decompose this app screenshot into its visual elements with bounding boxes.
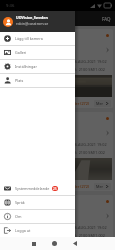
button[interactable]: Back xyxy=(73,241,77,246)
button[interactable]: UOVision_Sweden xyxy=(0,11,75,32)
button[interactable]: Om xyxy=(0,210,75,223)
button[interactable]: Mer xyxy=(94,183,111,190)
staticText: Logga ut xyxy=(15,228,31,233)
staticText: Galleri xyxy=(15,50,27,55)
button[interactable]: Inställningar xyxy=(0,60,75,73)
staticText: IMEI 86732 xyxy=(6,48,28,53)
staticText: robin@casstrom.se xyxy=(16,21,49,26)
staticText: UOVision_Sweden xyxy=(16,15,48,20)
staticText: Mer xyxy=(96,184,104,189)
button[interactable]: Home xyxy=(52,241,57,246)
button[interactable]: Mer xyxy=(94,100,111,107)
button[interactable]: Logga ut xyxy=(0,224,75,237)
button[interactable]: Kamera 2 xyxy=(2,112,113,191)
staticText: Plats xyxy=(15,78,24,83)
staticText: 98% 26-AUG-2021 19:02 xyxy=(63,225,107,230)
button[interactable]: Hämta bilder (272) xyxy=(4,100,90,107)
staticText: Systemmeddelande xyxy=(15,186,50,191)
staticText: Kamera 3 xyxy=(6,198,29,205)
staticText: Mer xyxy=(96,101,104,106)
staticText: Kamera 1 xyxy=(6,32,29,39)
button[interactable]: Systemmeddelande xyxy=(0,182,75,195)
staticText: Hämta bilder (272) xyxy=(56,101,90,106)
staticText: 100% 2100 SM/1.002 xyxy=(67,67,105,72)
staticText: Språk xyxy=(15,200,25,205)
staticText: 9:36 xyxy=(6,3,15,9)
staticText: Lägg till kamera xyxy=(15,36,43,41)
staticText: Hämta bilder (272) xyxy=(56,184,90,189)
staticText: Om xyxy=(15,214,22,219)
staticText: 98% 26-AUG-2021 19:02 xyxy=(63,142,107,147)
staticText: Inställningar xyxy=(15,64,37,69)
button[interactable]: Galleri xyxy=(0,46,75,59)
staticText: 25 xyxy=(53,187,57,191)
button[interactable]: Kamera 1 xyxy=(2,29,113,108)
button[interactable]: FAQ xyxy=(102,16,111,22)
staticText: 98% 26-AUG-2021 19:02 xyxy=(63,59,107,64)
button[interactable]: Lägg till kamera xyxy=(0,32,75,45)
button[interactable]: Språk xyxy=(0,196,75,209)
button[interactable]: Kamera 3 xyxy=(2,195,113,250)
button[interactable]: Plats xyxy=(0,74,75,87)
staticText: IMEI 86732 xyxy=(6,214,28,219)
button[interactable]: Hämta bilder (272) xyxy=(4,183,90,190)
staticText: 100% 2100 SM/1.002 xyxy=(67,150,105,155)
staticText: 100% 2100 SM/1.002 xyxy=(67,233,105,238)
